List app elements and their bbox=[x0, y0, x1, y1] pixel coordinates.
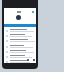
button[interactable] bbox=[4, 38, 36, 43]
button[interactable] bbox=[4, 33, 36, 38]
button[interactable] bbox=[4, 49, 36, 54]
button[interactable]: Account bbox=[16, 15, 21, 20]
button[interactable] bbox=[4, 59, 36, 64]
button[interactable] bbox=[4, 44, 36, 49]
button[interactable] bbox=[4, 28, 36, 33]
button[interactable] bbox=[4, 54, 36, 59]
